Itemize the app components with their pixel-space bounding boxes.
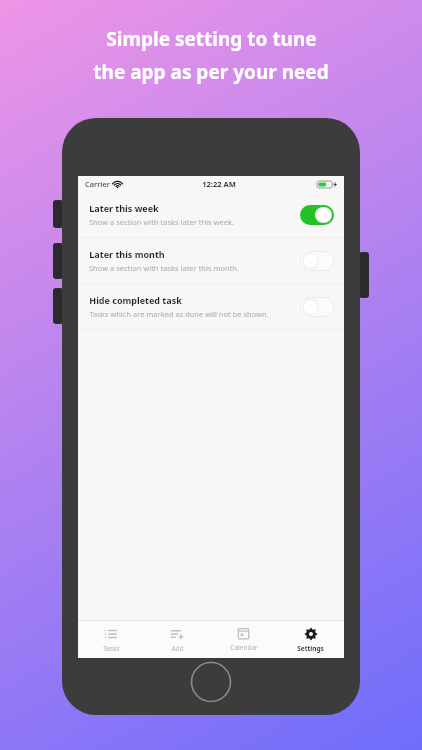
staticText: Show a section with tasks later this wee… xyxy=(89,217,234,227)
button[interactable]: Add xyxy=(144,621,210,658)
button[interactable]: Toggle on xyxy=(300,205,334,225)
staticText: Later this month xyxy=(89,248,165,260)
button[interactable]: Toggle off xyxy=(300,297,334,317)
button[interactable]: Later this month xyxy=(78,238,344,283)
staticText: Hide completed task xyxy=(89,294,182,306)
staticText: the app as per your need xyxy=(93,59,329,85)
button[interactable]: Tasks xyxy=(78,621,144,658)
staticText: Tasks xyxy=(103,644,120,653)
staticText: Show a section with tasks later this mon… xyxy=(89,263,239,273)
button[interactable]: Calendar xyxy=(210,621,277,658)
staticText: 12:22 AM xyxy=(202,179,236,189)
button[interactable]: Toggle off xyxy=(300,251,334,271)
staticText: Tasks which are marked as done will not … xyxy=(89,309,269,319)
button[interactable]: Hide completed task xyxy=(78,284,344,329)
staticText: Later this week xyxy=(89,202,159,214)
staticText: Simple setting to tune xyxy=(106,26,317,52)
staticText: Calendar xyxy=(230,643,258,652)
button[interactable]: Later this week xyxy=(78,192,344,237)
button[interactable]: Settings xyxy=(277,621,344,658)
staticText: Carrier xyxy=(85,179,110,189)
staticText: Settings xyxy=(297,644,324,653)
staticText: Add xyxy=(171,644,184,653)
